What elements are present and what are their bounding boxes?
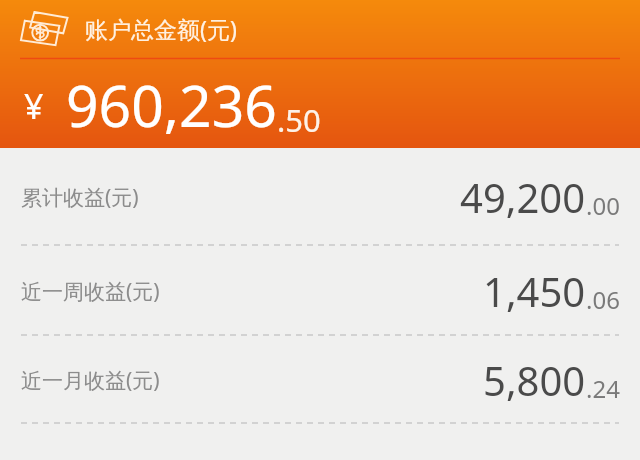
staticText: 账户总金额(元) [85, 13, 237, 44]
staticText: 960,236 [66, 66, 277, 144]
staticText: .24 [586, 372, 620, 405]
button[interactable]: ¥ [0, 62, 640, 148]
button[interactable]: 近一周收益(元) [0, 246, 640, 336]
other: Account balance [20, 11, 68, 47]
staticText: .06 [586, 283, 620, 316]
staticText: ¥ [24, 83, 44, 129]
staticText: 5,800 [483, 353, 586, 407]
button[interactable]: Account balance [0, 0, 640, 58]
staticText: .00 [586, 189, 620, 222]
button[interactable]: 累计收益(元) [0, 148, 640, 246]
staticText: 近一月收益(元) [21, 366, 160, 395]
staticText: 1,450 [483, 264, 586, 318]
staticText: 近一周收益(元) [21, 277, 160, 306]
button[interactable]: 近一月收益(元) [0, 336, 640, 424]
staticText: 49,200 [460, 170, 586, 224]
staticText: 累计收益(元) [21, 183, 139, 212]
staticText: .50 [277, 99, 321, 141]
